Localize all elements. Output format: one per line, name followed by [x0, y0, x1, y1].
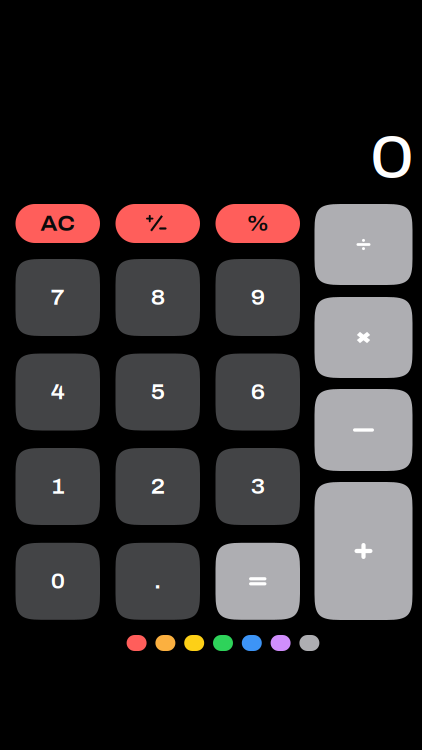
staticText: 7 — [51, 286, 65, 309]
button[interactable]: 1 — [15, 448, 100, 525]
button[interactable]: Plus — [314, 482, 412, 620]
staticText: . — [154, 570, 161, 593]
staticText: 9 — [251, 286, 265, 309]
staticText: 4 — [51, 380, 65, 404]
button[interactable]: Minus — [314, 389, 412, 471]
button[interactable]: 2 — [115, 448, 200, 525]
button[interactable]: 5 — [115, 353, 200, 430]
staticText: AC — [40, 212, 75, 235]
staticText: 2 — [151, 475, 165, 498]
staticText: 0 — [370, 126, 414, 190]
button[interactable]: Multiply — [314, 297, 412, 378]
staticText: 6 — [251, 380, 265, 404]
button[interactable]: Plus Minus — [115, 204, 200, 243]
button[interactable]: 6 — [215, 353, 300, 430]
button[interactable]: 9 — [215, 259, 300, 336]
staticText: 3 — [251, 475, 265, 498]
button[interactable]: AC — [15, 204, 100, 243]
staticText: 1 — [51, 475, 64, 498]
staticText: 0 — [51, 570, 65, 593]
button[interactable]: Equals — [215, 543, 300, 620]
staticText: 8 — [151, 286, 165, 309]
button[interactable]: . — [115, 543, 200, 620]
button[interactable]: 8 — [115, 259, 200, 336]
button[interactable]: 0 — [15, 543, 100, 620]
button[interactable]: 3 — [215, 448, 300, 525]
button[interactable]: % — [215, 204, 300, 243]
button[interactable]: 7 — [15, 259, 100, 336]
button[interactable]: Divide — [314, 204, 412, 285]
staticText: % — [247, 212, 269, 235]
staticText: 5 — [151, 380, 165, 404]
button[interactable]: 4 — [15, 353, 100, 430]
